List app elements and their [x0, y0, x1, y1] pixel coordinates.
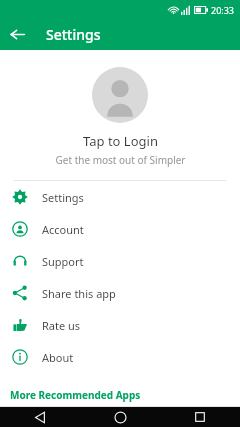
button[interactable]: Tap to Login — [0, 50, 240, 180]
staticText: Account — [42, 222, 84, 237]
staticText: More Recommended Apps — [10, 388, 141, 402]
staticText: Tap to Login — [83, 132, 158, 150]
button[interactable]: Recents — [160, 407, 240, 427]
staticText: Support — [42, 254, 84, 269]
staticText: Settings — [42, 190, 84, 205]
staticText: About — [42, 350, 74, 365]
button[interactable]: More Recommended Apps — [0, 384, 240, 406]
button[interactable]: Account — [0, 213, 240, 245]
button[interactable]: Share this app — [0, 277, 240, 309]
button[interactable]: Home — [80, 407, 160, 427]
staticText: 20:33 — [211, 4, 235, 16]
button[interactable]: Settings — [0, 181, 240, 213]
button[interactable]: Support — [0, 245, 240, 277]
staticText: Settings — [46, 25, 101, 44]
staticText: Rate us — [42, 318, 81, 333]
staticText: Get the most out of Simpler — [55, 153, 186, 167]
button[interactable]: Back — [0, 19, 34, 50]
button[interactable]: Back — [0, 407, 80, 427]
button[interactable]: Rate us — [0, 309, 240, 341]
button[interactable]: About — [0, 341, 240, 373]
staticText: Share this app — [42, 286, 116, 301]
